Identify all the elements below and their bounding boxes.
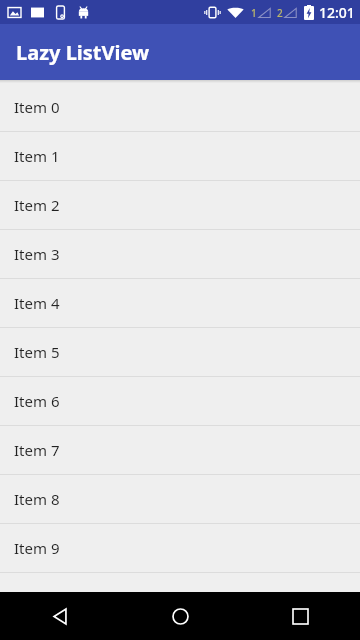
staticText: 2 <box>277 6 283 20</box>
button[interactable]: Home <box>158 594 202 638</box>
staticText: Item 2 <box>14 195 60 215</box>
button[interactable]: Item 5 <box>0 328 360 376</box>
staticText: Item 0 <box>14 97 60 117</box>
button[interactable]: Recent apps <box>278 594 322 638</box>
staticText: Item 4 <box>14 293 60 313</box>
staticText: Lazy ListView <box>16 39 150 66</box>
button[interactable]: Item 9 <box>0 524 360 572</box>
button[interactable]: Item 4 <box>0 279 360 327</box>
button[interactable]: Item 0 <box>0 83 360 131</box>
staticText: Item 7 <box>14 440 60 460</box>
staticText: Item 9 <box>14 538 60 558</box>
button[interactable]: Item 3 <box>0 230 360 278</box>
staticText: Item 3 <box>14 244 60 264</box>
staticText: Item 5 <box>14 342 60 362</box>
button[interactable]: Back <box>38 594 82 638</box>
staticText: 12:01 <box>319 3 355 22</box>
button[interactable]: Item 1 <box>0 132 360 180</box>
button[interactable]: Item 8 <box>0 475 360 523</box>
staticText: Item 1 <box>14 146 60 166</box>
staticText: Item 8 <box>14 489 60 509</box>
button[interactable]: Item 2 <box>0 181 360 229</box>
staticText: Item 6 <box>14 391 60 411</box>
staticText: 1 <box>251 6 257 20</box>
button[interactable]: Item 6 <box>0 377 360 425</box>
button[interactable]: Item 7 <box>0 426 360 474</box>
